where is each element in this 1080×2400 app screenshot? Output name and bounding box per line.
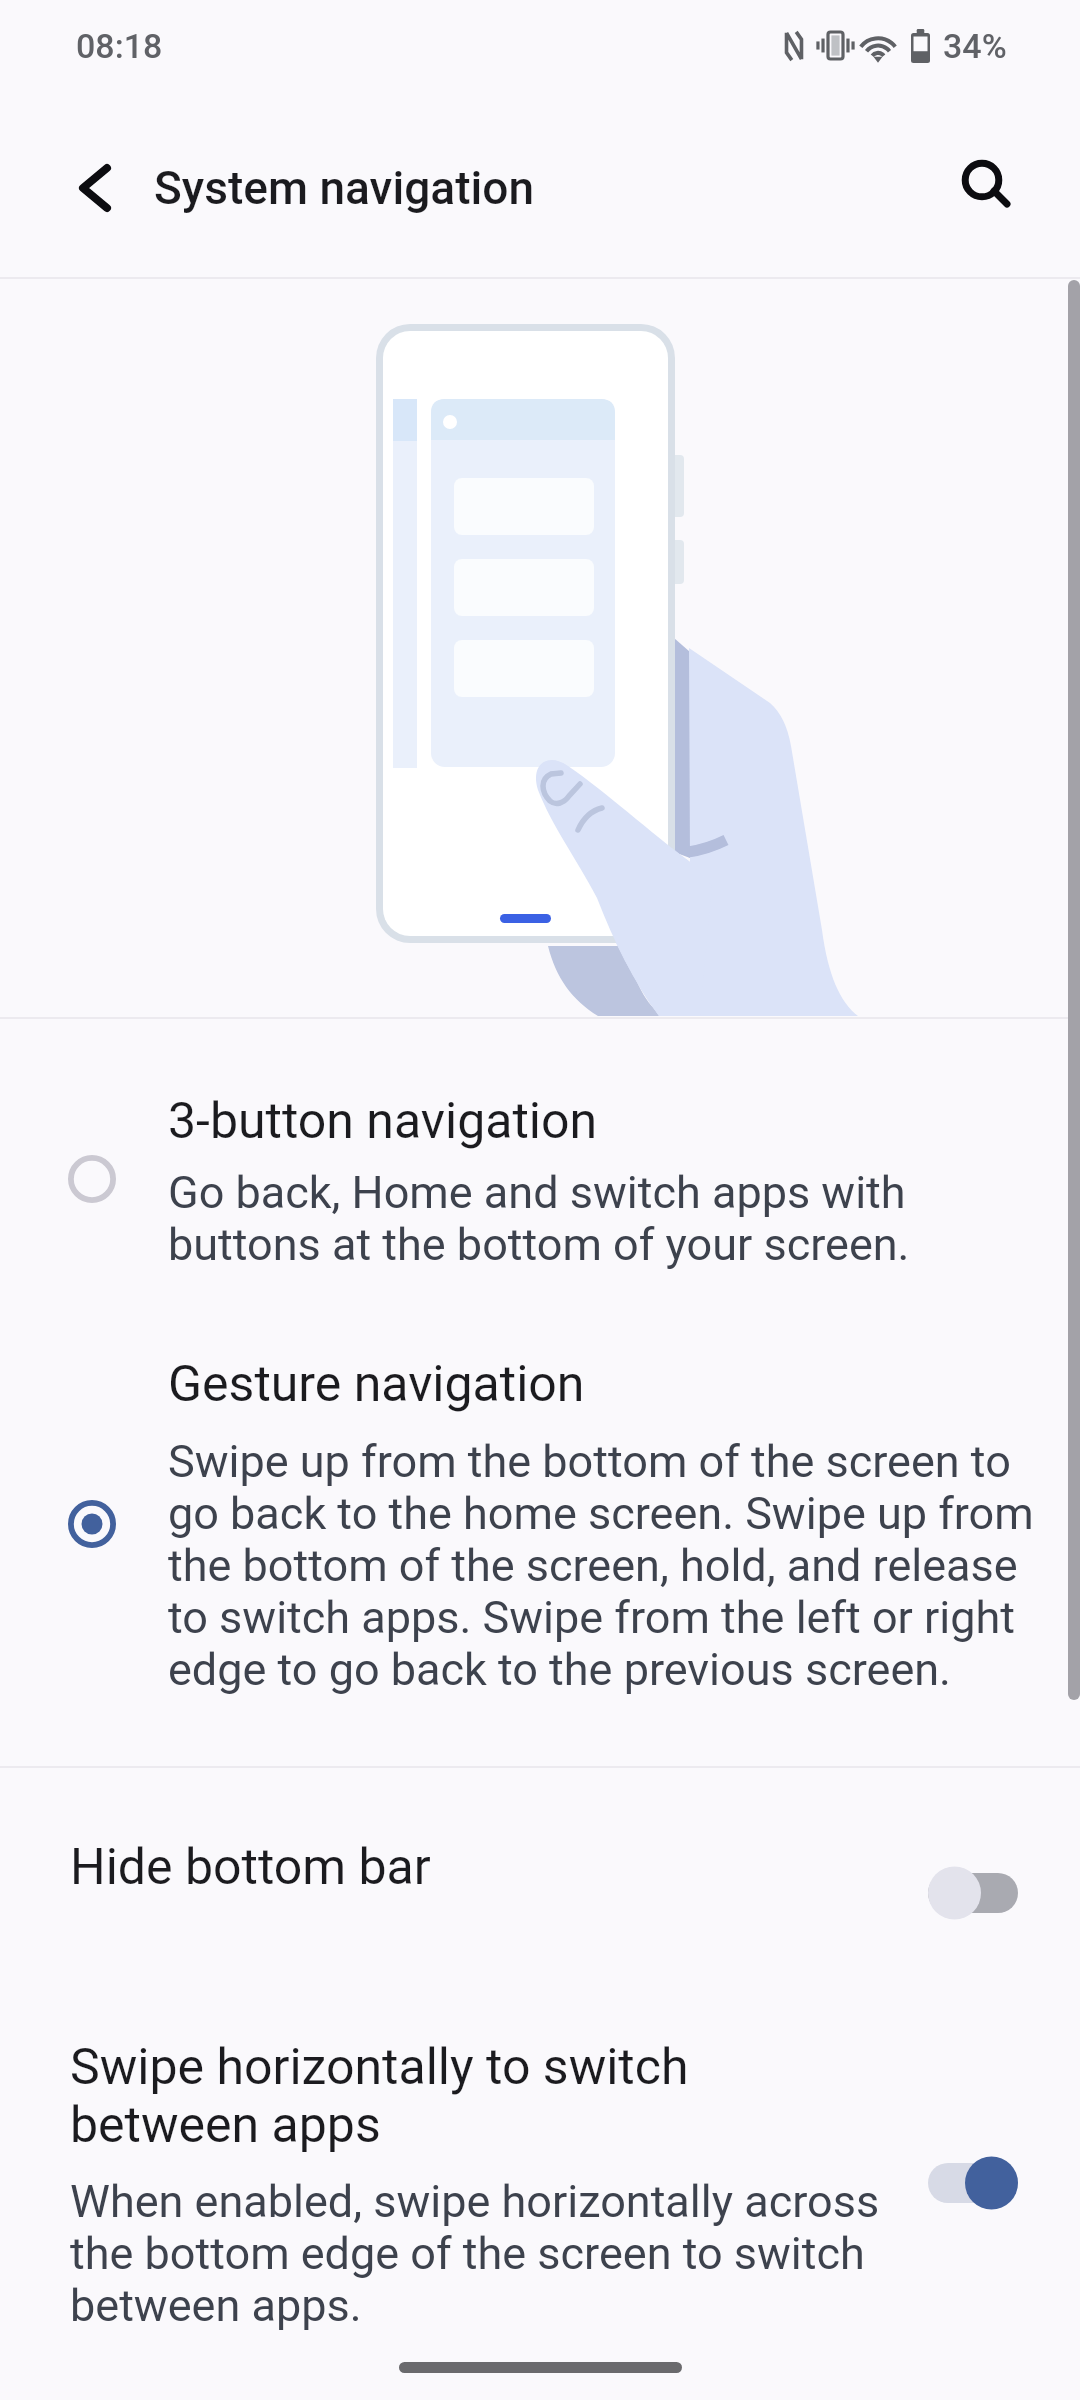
button[interactable]: 3-button navigation [0,1019,1080,1300]
staticText: Swipe up from the bottom of the screen t… [168,1436,1048,1696]
button[interactable]: Switch on [926,2155,1020,2211]
button[interactable]: Swipe horizontally to switch between app… [0,2020,1080,2350]
staticText: Gesture navigation [168,1355,1058,1413]
staticText: Go back, Home and switch apps with butto… [168,1167,1048,1271]
staticText: 34% [943,26,1007,66]
button[interactable]: Switch off [926,1865,1020,1921]
staticText: Swipe horizontally to switch between app… [70,2038,840,2154]
button[interactable]: Back [47,140,143,236]
button[interactable]: Gesture navigation [0,1300,1080,1766]
staticText: 3-button navigation [168,1092,1058,1150]
button[interactable]: Search [938,136,1034,232]
staticText: System navigation [154,161,534,215]
button[interactable]: Hide bottom bar [0,1768,1080,2020]
staticText: 08:18 [76,26,163,66]
staticText: Hide bottom bar [70,1838,431,1896]
staticText: When enabled, swipe horizontally across … [70,2176,910,2332]
